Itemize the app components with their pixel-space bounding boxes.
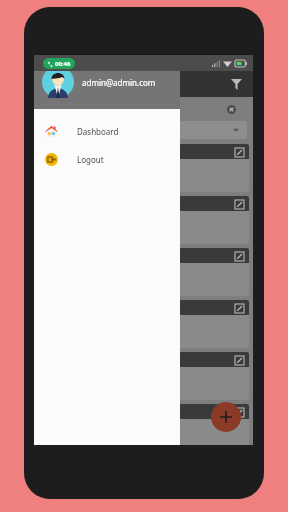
- button[interactable]: Edit: [38, 300, 249, 348]
- button[interactable]: Edit: [38, 404, 249, 445]
- staticText: Gas Meter Verification: [44, 163, 128, 174]
- staticText: 00:46: [55, 60, 71, 68]
- button[interactable]: Edit: [38, 248, 249, 296]
- button[interactable]: [40, 121, 247, 139]
- staticText: admin@admin.com: [82, 77, 156, 88]
- button[interactable]: Edit: [233, 198, 245, 210]
- button[interactable]: Edit: [233, 302, 245, 314]
- staticText: Logout: [77, 154, 104, 165]
- button[interactable]: Edit: [38, 144, 249, 192]
- button[interactable]: Edit: [38, 352, 249, 400]
- button[interactable]: Clear search: [223, 101, 239, 117]
- button[interactable]: Edit: [233, 354, 245, 366]
- button[interactable]: Filter: [227, 75, 245, 93]
- button[interactable]: Logout: [34, 145, 180, 173]
- button[interactable]: Dashboard: [34, 117, 180, 145]
- button[interactable]: Edit: [233, 406, 245, 418]
- button[interactable]: Add: [211, 402, 241, 432]
- button[interactable]: Edit: [233, 250, 245, 262]
- button[interactable]: Edit: [38, 196, 249, 244]
- button[interactable]: Edit: [233, 146, 245, 158]
- staticText: Dashboard: [77, 126, 119, 137]
